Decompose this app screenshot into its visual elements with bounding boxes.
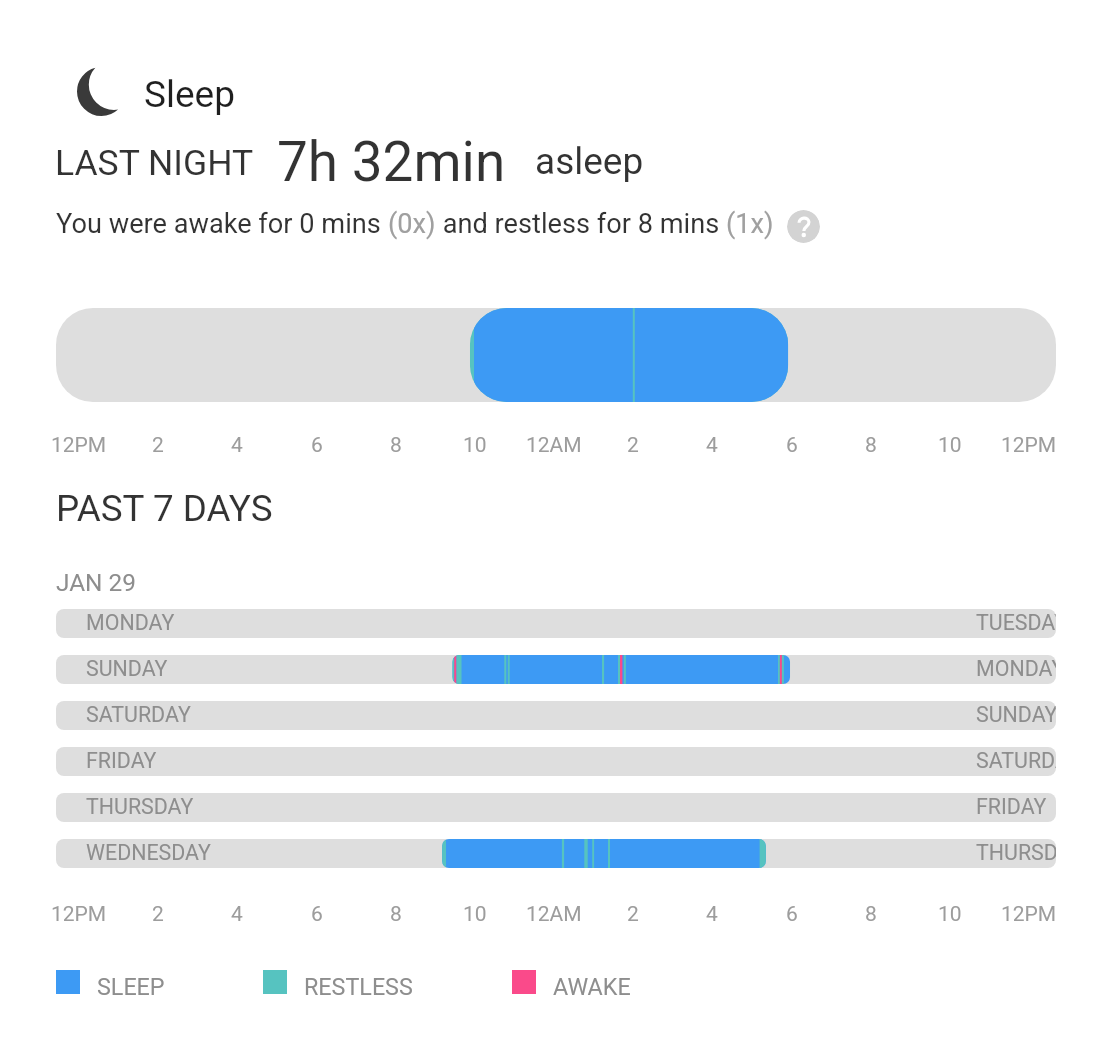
staticText: and restless for 8 mins xyxy=(436,208,726,240)
staticText: 8 xyxy=(390,433,402,458)
staticText: 10 xyxy=(938,433,962,458)
button[interactable]: SLEEP xyxy=(50,962,211,1002)
button[interactable]: Help xyxy=(787,210,820,243)
button[interactable] xyxy=(56,308,1056,402)
button[interactable]: WEDNESDAY xyxy=(56,839,1056,868)
staticText: Sleep xyxy=(144,73,235,116)
button[interactable]: SATURDAY xyxy=(56,701,1056,730)
staticText: SATURDAY xyxy=(976,748,1056,773)
staticText: 8 xyxy=(865,902,877,927)
staticText: 2 xyxy=(152,902,164,927)
staticText: THURSDAY xyxy=(976,840,1056,865)
staticText: (1x) xyxy=(726,208,774,240)
staticText: 12PM xyxy=(1001,433,1057,458)
staticText: SLEEP xyxy=(97,973,165,1000)
staticText: 4 xyxy=(231,902,243,927)
staticText: SUNDAY xyxy=(976,702,1056,727)
staticText: You were awake for 0 mins xyxy=(56,208,388,240)
staticText: 10 xyxy=(463,433,487,458)
staticText: AWAKE xyxy=(553,973,631,1000)
staticText: 6 xyxy=(311,902,323,927)
staticText: 2 xyxy=(152,433,164,458)
staticText: 10 xyxy=(463,902,487,927)
staticText: 8 xyxy=(390,902,402,927)
staticText: 2 xyxy=(627,433,639,458)
staticText: 2 xyxy=(627,902,639,927)
staticText: FRIDAY xyxy=(976,794,1047,819)
button[interactable]: FRIDAY xyxy=(56,747,1056,776)
staticText: THURSDAY xyxy=(86,794,194,819)
staticText: JAN 29 xyxy=(56,568,136,597)
staticText: SUNDAY xyxy=(86,656,168,681)
staticText: 6 xyxy=(311,433,323,458)
staticText: asleep xyxy=(535,140,644,183)
staticText: 12PM xyxy=(51,902,107,927)
staticText: 8 xyxy=(865,433,877,458)
button[interactable]: MONDAY xyxy=(56,609,1056,638)
staticText: 7h 32min xyxy=(277,130,506,194)
staticText: MONDAY xyxy=(976,656,1056,681)
staticText: 4 xyxy=(231,433,243,458)
staticText: RESTLESS xyxy=(304,973,413,1000)
staticText: MONDAY xyxy=(86,610,175,635)
staticText: WEDNESDAY xyxy=(86,840,211,865)
staticText: 12AM xyxy=(526,433,582,458)
staticText: 4 xyxy=(706,902,718,927)
staticText: FRIDAY xyxy=(86,748,157,773)
button[interactable]: AWAKE xyxy=(506,962,667,1002)
staticText: TUESDAY xyxy=(976,610,1056,635)
staticText: 6 xyxy=(786,433,798,458)
staticText: SATURDAY xyxy=(86,702,191,727)
button[interactable]: RESTLESS xyxy=(257,962,418,1002)
staticText: 12AM xyxy=(526,902,582,927)
button[interactable]: THURSDAY xyxy=(56,793,1056,822)
staticText: 12PM xyxy=(51,433,107,458)
staticText: 6 xyxy=(786,902,798,927)
staticText: 10 xyxy=(938,902,962,927)
staticText: 12PM xyxy=(1001,902,1057,927)
staticText: PAST 7 DAYS xyxy=(56,487,273,530)
staticText: LAST NIGHT xyxy=(55,142,254,184)
button[interactable]: SUNDAY xyxy=(56,655,1056,684)
staticText: (0x) xyxy=(388,208,436,240)
staticText: 4 xyxy=(706,433,718,458)
